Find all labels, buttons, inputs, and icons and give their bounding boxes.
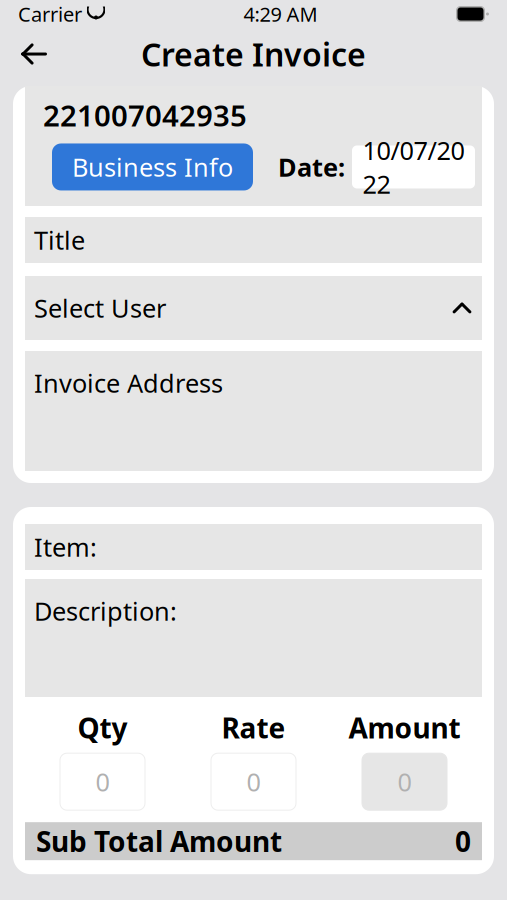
button[interactable]: Invoice Address (25, 351, 482, 471)
button[interactable]: 0 (211, 753, 296, 810)
staticText: Business Info (72, 150, 233, 184)
staticText: Description: (34, 594, 177, 628)
staticText: Carrier (18, 1, 82, 27)
button[interactable]: Back (6, 31, 62, 77)
staticText: 0 (95, 765, 109, 798)
staticText: 0 (455, 823, 471, 860)
button[interactable]: 0 (60, 753, 145, 810)
staticText: Qty (77, 709, 127, 746)
staticText: Sub Total Amount (36, 823, 282, 860)
staticText: Create Invoice (141, 33, 366, 75)
staticText: 0 (397, 765, 411, 798)
staticText: Amount (348, 709, 460, 746)
button[interactable]: Item: (25, 524, 482, 570)
button[interactable]: 10/07/2022 (352, 145, 475, 188)
button[interactable]: Business Info (52, 143, 253, 190)
staticText: 10/07/2022 (362, 133, 464, 201)
staticText: 221007042935 (43, 95, 247, 134)
staticText: Select User (34, 291, 166, 325)
staticText: Rate (221, 709, 285, 746)
staticText: Invoice Address (34, 366, 223, 400)
staticText: Date: (278, 150, 345, 184)
staticText: Title (34, 223, 85, 257)
button[interactable]: Description: (25, 579, 482, 697)
staticText: Item: (34, 530, 97, 564)
button[interactable]: Select User (25, 276, 482, 340)
staticText: 0 (246, 765, 260, 798)
button[interactable]: Title (25, 217, 482, 263)
staticText: 4:29 AM (243, 1, 317, 27)
